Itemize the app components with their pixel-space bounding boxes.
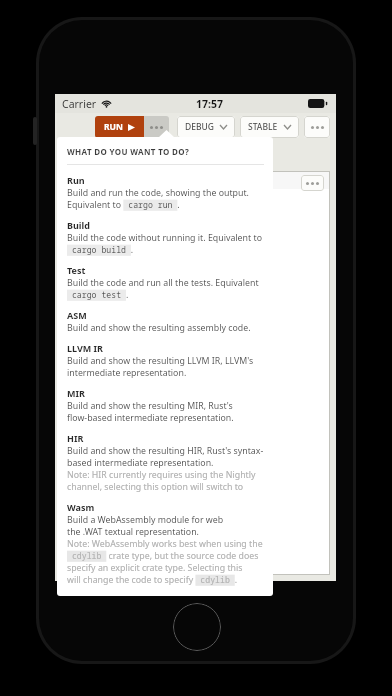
staticText: DEBUG	[185, 121, 214, 133]
button[interactable]	[95, 143, 155, 165]
staticText: Build the code without running it. Equiv…	[67, 232, 262, 244]
staticText: specify an explicit crate type. Selectin…	[67, 562, 264, 574]
staticText: will change the code to specify cdylib .	[67, 574, 238, 586]
staticText: cargo build .	[67, 244, 134, 256]
staticText: Build and show the resulting MIR, Rust's…	[67, 400, 264, 412]
button[interactable]: DEBUG	[177, 116, 235, 138]
button[interactable]: Build	[67, 219, 264, 256]
button[interactable]: Test	[67, 264, 264, 301]
staticText: Note: HIR currently requires using the N…	[67, 469, 256, 481]
staticText: Wasm	[67, 501, 95, 513]
staticText: Note: WebAssembly works best when using …	[67, 538, 263, 550]
staticText: LLVM IR	[67, 342, 103, 354]
staticText: intermediate representation.	[67, 367, 187, 379]
staticText: MIR	[67, 387, 85, 399]
staticText: RUN	[104, 121, 123, 133]
staticText: Equivalent to cargo run .	[67, 199, 180, 211]
staticText: Build the code and run all the tests. Eq…	[67, 277, 264, 289]
staticText: WHAT DO YOU WANT TO DO?	[67, 146, 190, 157]
staticText: based intermediate representation.	[67, 457, 214, 469]
button[interactable]: LLVM IR	[67, 342, 264, 379]
button[interactable]: MIR	[67, 387, 264, 424]
staticText: the .WAT textual representation.	[67, 526, 199, 538]
staticText: Build a WebAssembly module for web brows…	[67, 514, 264, 526]
button[interactable]: More run options	[144, 116, 169, 138]
staticText: Run	[67, 174, 85, 186]
button[interactable]: RUN	[95, 116, 144, 138]
staticText: Build and run the code, showing the outp…	[67, 187, 249, 199]
staticText: Build and show the resulting HIR, Rust's…	[67, 445, 264, 457]
staticText: HIR	[67, 432, 84, 444]
button[interactable]: STABLE	[240, 116, 299, 138]
staticText: cdylib crate type, but the source code d…	[67, 550, 264, 562]
button[interactable]: Wasm	[67, 501, 264, 586]
staticText: cargo test .	[67, 289, 129, 301]
staticText: Build and show the resulting LLVM IR, LL…	[67, 355, 254, 367]
staticText: Carrier	[62, 97, 97, 111]
staticText: ASM	[67, 309, 87, 321]
staticText: channel, selecting this option will swit…	[67, 481, 264, 493]
staticText: flow-based intermediate representation.	[67, 412, 234, 424]
staticText: STABLE	[248, 121, 278, 133]
button[interactable]: Run	[67, 174, 264, 211]
staticText: Test	[67, 264, 86, 276]
staticText: 17:57	[196, 97, 223, 111]
button[interactable]: ASM	[67, 309, 264, 334]
button[interactable]: Editor options	[301, 175, 324, 191]
staticText: Build and show the resulting assembly co…	[67, 322, 251, 334]
button[interactable]: More options	[304, 116, 330, 138]
button[interactable]: HIR	[67, 432, 264, 493]
button[interactable]: G	[223, 143, 267, 165]
button[interactable]	[160, 143, 218, 165]
staticText: Build	[67, 219, 90, 231]
